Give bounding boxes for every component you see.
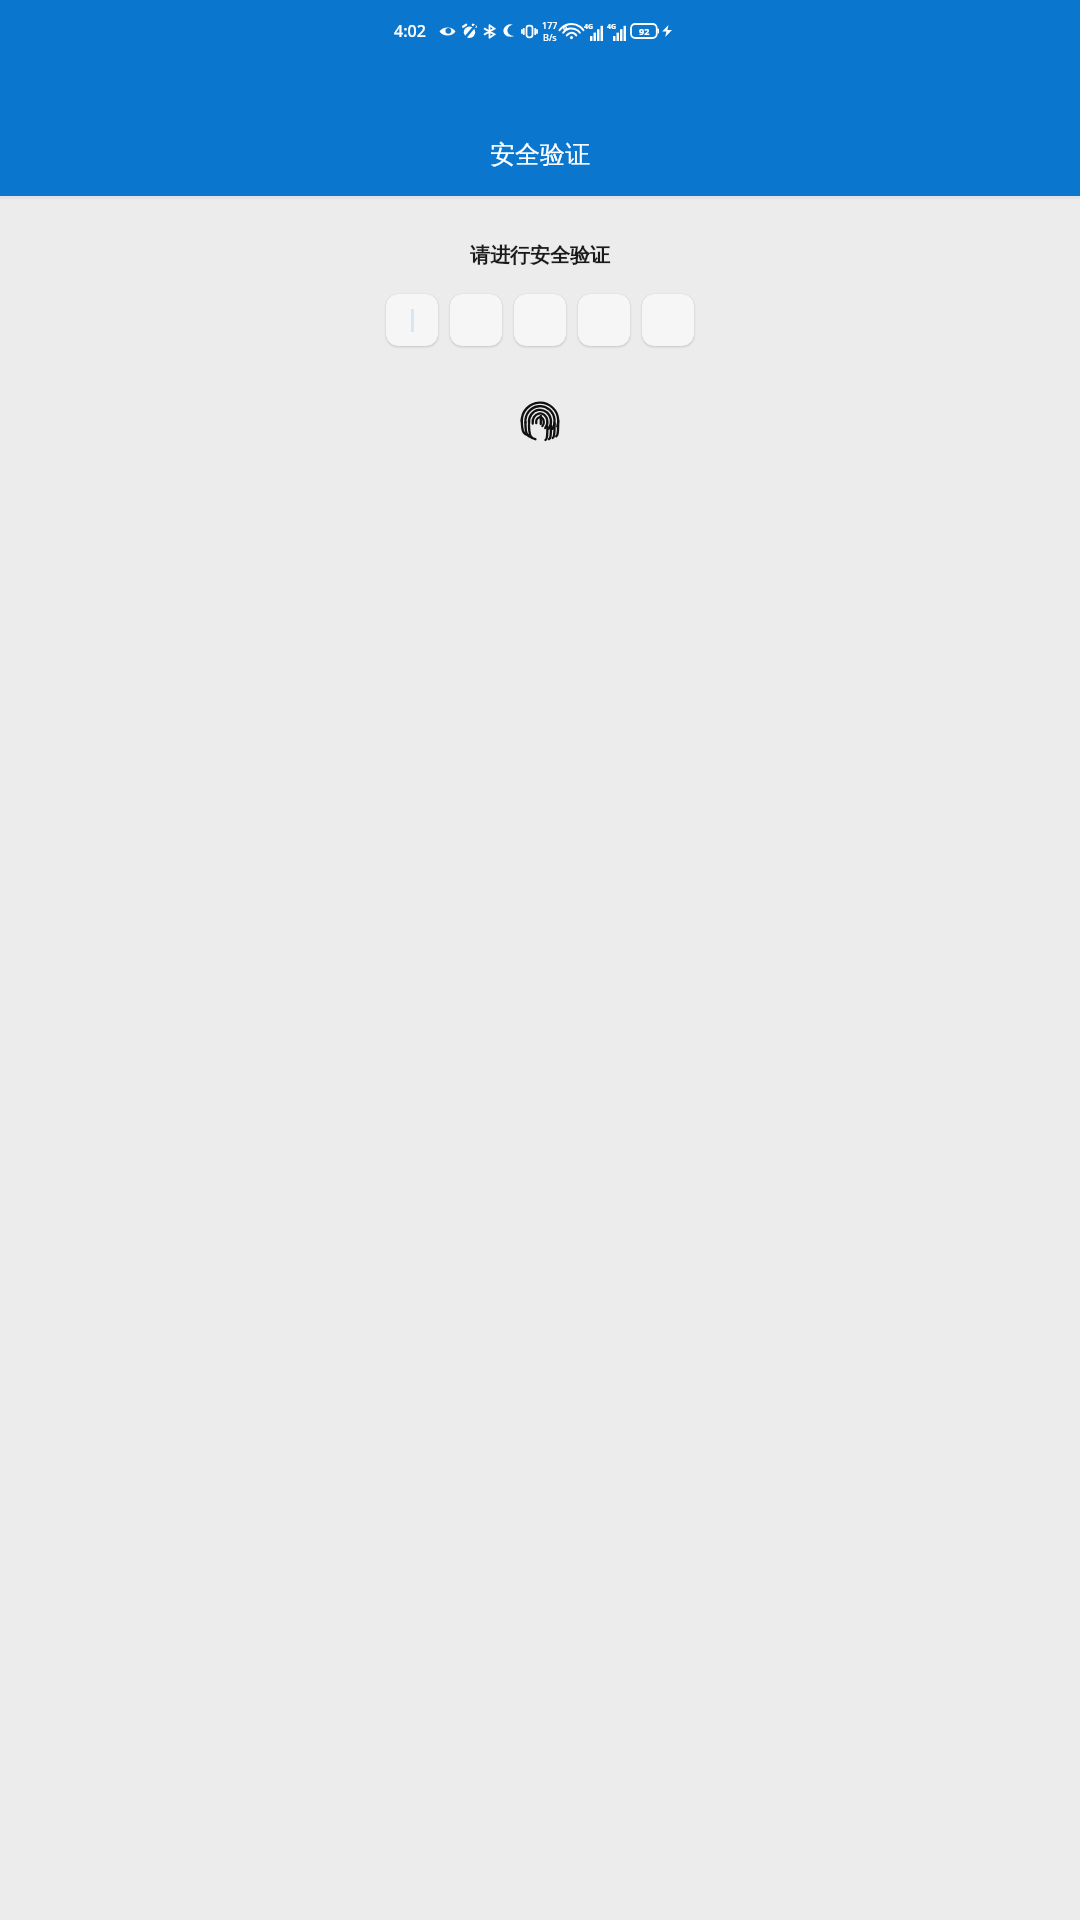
- staticText: 请进行安全验证: [0, 243, 1080, 268]
- button[interactable]: [450, 294, 502, 346]
- staticText: 4G: [584, 22, 594, 32]
- button[interactable]: [642, 294, 694, 346]
- button[interactable]: [578, 294, 630, 346]
- staticText: 177: [542, 19, 558, 31]
- button[interactable]: [386, 294, 438, 346]
- button[interactable]: 指纹验证: [512, 392, 568, 448]
- staticText: 6: [563, 23, 568, 33]
- staticText: 4G: [607, 22, 617, 32]
- staticText: 4:02: [394, 20, 426, 42]
- staticText: B/s: [543, 31, 557, 43]
- staticText: 安全验证: [490, 139, 590, 170]
- button[interactable]: [514, 294, 566, 346]
- staticText: 92: [639, 25, 650, 37]
